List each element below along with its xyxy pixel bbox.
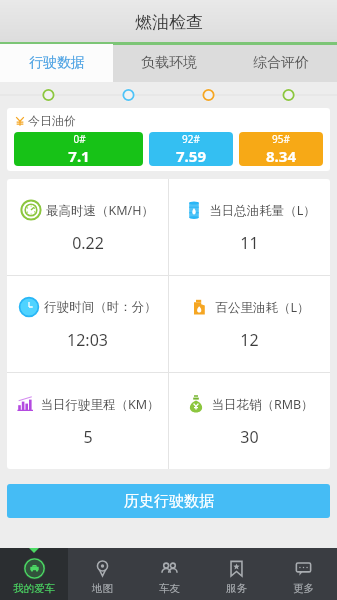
button[interactable]: 最高时速（KM/H） [7, 179, 168, 275]
staticText: 0.22 [72, 232, 104, 254]
staticText: 当日行驶里程（KM） [40, 396, 160, 413]
staticText: 地图 [92, 582, 113, 595]
staticText: 行驶时间（时：分） [44, 299, 157, 315]
staticText: 今日油价 [28, 113, 76, 128]
button[interactable]: 地图 [68, 548, 136, 600]
staticText: 更多 [293, 582, 314, 595]
staticText: 92# [182, 132, 200, 146]
button[interactable]: 当日总油耗量（L） [169, 179, 330, 275]
staticText: 车友 [159, 582, 180, 595]
staticText: 12:03 [67, 329, 108, 351]
button[interactable]: 百公里油耗（L） [169, 276, 330, 372]
staticText: 当日花销（RMB） [211, 396, 314, 413]
staticText: 服务 [226, 582, 247, 595]
staticText: 11 [240, 232, 259, 254]
staticText: 最高时速（KM/H） [46, 202, 154, 219]
staticText: 燃油检查 [135, 12, 203, 33]
button[interactable]: 服务 [203, 548, 270, 600]
staticText: 我的爱车 [13, 582, 55, 595]
staticText: 7.1 [68, 146, 90, 166]
staticText: 8.34 [266, 146, 296, 166]
button[interactable]: 综合评价 [225, 44, 337, 82]
staticText: 0# [73, 132, 86, 146]
button[interactable]: 92# [149, 132, 233, 166]
staticText: 历史行驶数据 [124, 492, 214, 511]
staticText: 行驶数据 [29, 54, 85, 72]
button[interactable]: 行驶数据 [0, 44, 113, 82]
staticText: 12 [240, 329, 259, 351]
staticText: 综合评价 [253, 54, 309, 72]
button[interactable]: 95# [239, 132, 323, 166]
button[interactable]: 当日花销（RMB） [169, 373, 330, 469]
button[interactable]: 行驶时间（时：分） [7, 276, 168, 372]
staticText: 30 [240, 426, 259, 448]
button[interactable]: 历史行驶数据 [7, 484, 330, 518]
button[interactable]: 我的爱车 [0, 548, 68, 600]
button[interactable]: 0# [14, 132, 143, 166]
staticText: 百公里油耗（L） [215, 299, 310, 316]
button[interactable]: 车友 [136, 548, 203, 600]
button[interactable]: 当日行驶里程（KM） [7, 373, 168, 469]
button[interactable]: 更多 [270, 548, 337, 600]
staticText: 5 [83, 426, 93, 448]
staticText: 95# [272, 132, 290, 146]
staticText: 负载环境 [141, 54, 197, 72]
button[interactable]: 负载环境 [113, 44, 225, 82]
staticText: 当日总油耗量（L） [209, 202, 316, 219]
staticText: 7.59 [176, 146, 206, 166]
